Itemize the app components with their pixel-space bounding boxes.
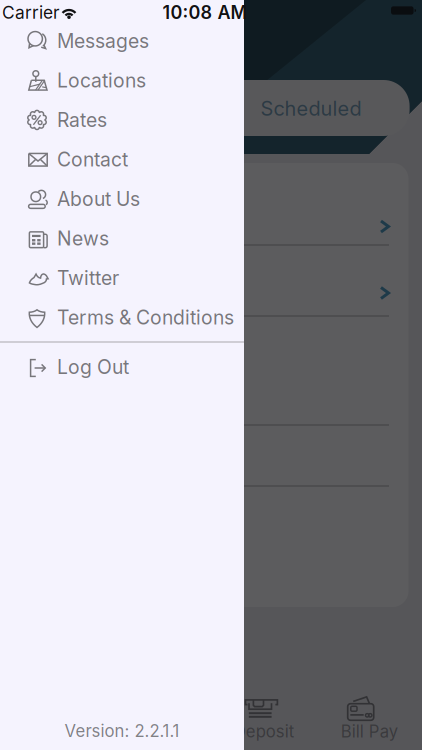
button[interactable]: Scheduled transfer bbox=[12, 163, 408, 245]
button[interactable]: Scheduled transfer bbox=[12, 245, 408, 316]
staticText: Locations bbox=[57, 69, 146, 92]
staticText: Twitter bbox=[57, 266, 119, 290]
button[interactable]: Messages bbox=[0, 21, 244, 61]
button[interactable]: News bbox=[0, 219, 244, 258]
staticText: Scheduled bbox=[260, 96, 361, 121]
button[interactable]: Deposit bbox=[211, 684, 316, 750]
button[interactable]: Close menu bbox=[244, 0, 422, 750]
staticText: Bill Pay bbox=[341, 721, 398, 742]
staticText: Log Out bbox=[57, 355, 129, 379]
staticText: Rates bbox=[57, 108, 107, 132]
button[interactable]: About Us bbox=[0, 179, 244, 219]
button[interactable]: Terms & Conditions bbox=[0, 298, 244, 337]
button[interactable]: Bill Pay bbox=[316, 684, 422, 750]
staticText: Contact bbox=[57, 148, 128, 171]
button[interactable]: Locations bbox=[0, 61, 244, 100]
staticText: Carrier bbox=[2, 2, 60, 23]
button[interactable]: Scheduled bbox=[12, 80, 410, 136]
staticText: Messages bbox=[57, 29, 149, 53]
staticText: Terms & Conditions bbox=[57, 306, 234, 329]
staticText: 10:08 AM bbox=[162, 2, 247, 23]
staticText: News bbox=[57, 227, 109, 250]
button[interactable]: Log Out bbox=[0, 347, 244, 387]
button[interactable]: Rates bbox=[0, 100, 244, 140]
staticText: Deposit bbox=[234, 721, 294, 742]
staticText: About Us bbox=[57, 187, 140, 211]
button[interactable]: Contact bbox=[0, 140, 244, 179]
button[interactable]: Twitter bbox=[0, 258, 244, 298]
staticText: Version: 2.2.1.1 bbox=[64, 721, 179, 741]
